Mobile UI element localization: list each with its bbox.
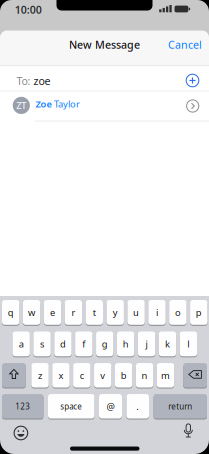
staticText: zoe bbox=[33, 74, 50, 88]
staticText: q bbox=[8, 306, 14, 319]
button[interactable]: x bbox=[52, 363, 70, 388]
staticText: x bbox=[58, 369, 63, 381]
button[interactable]: u bbox=[127, 300, 145, 325]
staticText: y bbox=[113, 306, 118, 319]
staticText: New Message bbox=[69, 37, 140, 52]
button[interactable]: Shift bbox=[2, 363, 26, 388]
staticText: f bbox=[82, 338, 85, 350]
staticText: To: bbox=[16, 74, 30, 88]
button[interactable]: Delete bbox=[183, 363, 207, 388]
button[interactable]: Info bbox=[186, 99, 199, 112]
staticText: 10:00 bbox=[15, 2, 42, 17]
button[interactable]: ZT bbox=[0, 91, 209, 121]
staticText: p bbox=[196, 306, 202, 319]
button[interactable]: a bbox=[12, 331, 30, 356]
button[interactable]: z bbox=[31, 363, 49, 388]
button[interactable]: w bbox=[23, 300, 40, 325]
button[interactable]: k bbox=[159, 331, 176, 356]
button[interactable]: t bbox=[86, 300, 103, 325]
button[interactable]: return bbox=[153, 394, 207, 419]
staticText: n bbox=[142, 369, 148, 381]
button[interactable]: f bbox=[75, 331, 92, 356]
button[interactable]: @ bbox=[99, 394, 122, 419]
staticText: b bbox=[121, 369, 127, 381]
button[interactable]: m bbox=[157, 363, 174, 388]
button[interactable]: g bbox=[96, 331, 113, 356]
button[interactable]: p bbox=[190, 300, 207, 325]
staticText: m bbox=[161, 369, 170, 381]
button[interactable]: j bbox=[138, 331, 155, 356]
staticText: @ bbox=[106, 400, 114, 412]
staticText: d bbox=[60, 338, 66, 350]
button[interactable]: v bbox=[94, 363, 111, 388]
staticText: z bbox=[38, 369, 42, 381]
staticText: space bbox=[60, 401, 82, 412]
staticText: t bbox=[93, 306, 96, 319]
button[interactable]: n bbox=[136, 363, 153, 388]
staticText: Cancel bbox=[168, 37, 202, 52]
staticText: return bbox=[168, 401, 192, 412]
button[interactable]: e bbox=[44, 300, 61, 325]
button[interactable]: s bbox=[33, 331, 51, 356]
staticText: r bbox=[71, 306, 75, 319]
button[interactable]: l bbox=[180, 331, 197, 356]
button[interactable]: d bbox=[54, 331, 72, 356]
staticText: Taylor bbox=[54, 98, 80, 110]
button[interactable]: Cancel bbox=[142, 37, 202, 52]
staticText: c bbox=[80, 369, 84, 381]
button[interactable]: r bbox=[65, 300, 82, 325]
staticText: . bbox=[136, 400, 139, 412]
button[interactable]: h bbox=[117, 331, 134, 356]
staticText: ZT bbox=[16, 99, 26, 112]
staticText: u bbox=[133, 306, 139, 319]
staticText: Zoe bbox=[36, 98, 52, 110]
staticText: j bbox=[145, 338, 147, 350]
button[interactable]: y bbox=[106, 300, 124, 325]
button[interactable]: c bbox=[73, 363, 90, 388]
staticText: w bbox=[28, 306, 35, 319]
staticText: g bbox=[102, 338, 108, 350]
button[interactable]: b bbox=[115, 363, 132, 388]
staticText: e bbox=[50, 306, 55, 319]
staticText: l bbox=[187, 338, 189, 350]
staticText: k bbox=[165, 338, 170, 350]
staticText: o bbox=[175, 306, 181, 319]
button[interactable]: o bbox=[169, 300, 187, 325]
staticText: h bbox=[123, 338, 129, 350]
staticText: 123 bbox=[15, 401, 30, 412]
staticText: i bbox=[156, 306, 158, 319]
button[interactable]: i bbox=[148, 300, 166, 325]
button[interactable]: space bbox=[48, 394, 94, 419]
button[interactable]: 123 bbox=[2, 394, 43, 419]
button[interactable]: Emoji bbox=[11, 423, 31, 443]
staticText: a bbox=[19, 338, 24, 350]
staticText: v bbox=[100, 369, 105, 381]
button[interactable]: q bbox=[2, 300, 19, 325]
staticText: s bbox=[40, 338, 44, 350]
button[interactable]: Add Contact bbox=[186, 74, 199, 87]
button[interactable]: . bbox=[126, 394, 149, 419]
button[interactable]: Dictation bbox=[178, 420, 198, 440]
